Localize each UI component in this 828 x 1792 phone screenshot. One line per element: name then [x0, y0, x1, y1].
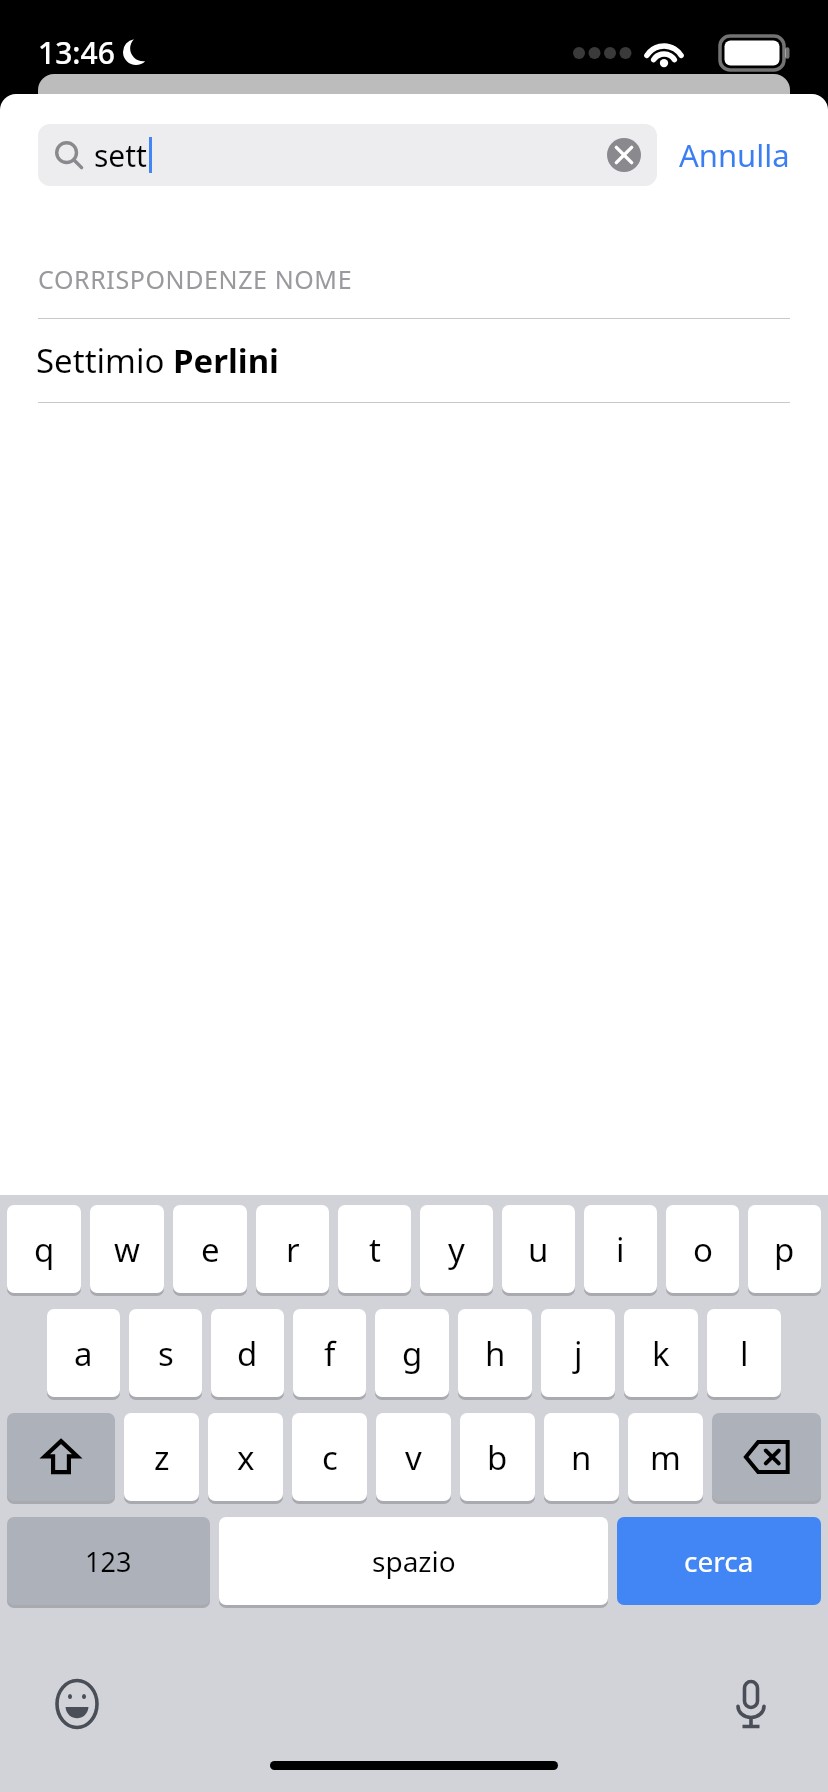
- staticText: g: [402, 1331, 423, 1376]
- button[interactable]: e: [173, 1205, 247, 1293]
- staticText: j: [574, 1331, 583, 1376]
- button[interactable]: h: [458, 1309, 532, 1397]
- button[interactable]: r: [256, 1205, 329, 1293]
- button[interactable]: m: [628, 1413, 703, 1501]
- button[interactable]: l: [707, 1309, 781, 1397]
- button[interactable]: u: [502, 1205, 575, 1293]
- staticText: i: [616, 1227, 625, 1272]
- button[interactable]: [7, 1413, 115, 1501]
- button[interactable]: Dictation: [722, 1675, 780, 1733]
- button[interactable]: [712, 1413, 821, 1501]
- other: Shift: [7, 1413, 115, 1504]
- staticText: Annulla: [679, 134, 790, 176]
- button[interactable]: y: [420, 1205, 493, 1293]
- button[interactable]: c: [292, 1413, 367, 1501]
- button[interactable]: Annulla: [657, 128, 798, 182]
- staticText: f: [324, 1331, 336, 1376]
- button[interactable]: i: [584, 1205, 657, 1293]
- button[interactable]: t: [338, 1205, 411, 1293]
- staticText: cerca: [684, 1542, 754, 1580]
- staticText: w: [114, 1227, 140, 1272]
- button[interactable]: b: [460, 1413, 535, 1501]
- staticText: a: [74, 1331, 93, 1376]
- staticText: y: [448, 1227, 465, 1272]
- staticText: sett: [94, 135, 147, 176]
- button[interactable]: f: [293, 1309, 366, 1397]
- staticText: q: [34, 1227, 55, 1272]
- button[interactable]: g: [375, 1309, 449, 1397]
- staticText: t: [369, 1227, 381, 1272]
- button[interactable]: sett: [38, 124, 657, 186]
- staticText: v: [405, 1435, 422, 1480]
- staticText: n: [571, 1435, 592, 1480]
- staticText: o: [693, 1227, 713, 1272]
- button[interactable]: Settimio Perlini: [0, 319, 828, 402]
- button[interactable]: Clear text: [607, 138, 641, 172]
- staticText: r: [286, 1227, 300, 1272]
- button[interactable]: s: [129, 1309, 202, 1397]
- staticText: spazio: [372, 1542, 456, 1580]
- staticText: h: [485, 1331, 506, 1376]
- button[interactable]: a: [47, 1309, 120, 1397]
- button[interactable]: q: [7, 1205, 81, 1293]
- button[interactable]: o: [666, 1205, 739, 1293]
- button[interactable]: x: [208, 1413, 283, 1501]
- staticText: e: [201, 1227, 220, 1272]
- button[interactable]: cerca: [617, 1517, 821, 1605]
- staticText: p: [774, 1227, 795, 1272]
- button[interactable]: 123: [7, 1517, 210, 1605]
- button[interactable]: w: [90, 1205, 164, 1293]
- staticText: k: [652, 1331, 670, 1376]
- button[interactable]: v: [376, 1413, 451, 1501]
- staticText: m: [650, 1435, 681, 1480]
- staticText: s: [158, 1331, 174, 1376]
- button[interactable]: p: [748, 1205, 821, 1293]
- staticText: l: [740, 1331, 749, 1376]
- staticText: z: [154, 1435, 170, 1480]
- button[interactable]: Emoji keyboard: [48, 1675, 106, 1733]
- staticText: c: [322, 1435, 338, 1480]
- staticText: x: [237, 1435, 255, 1480]
- button[interactable]: d: [211, 1309, 284, 1397]
- button[interactable]: z: [124, 1413, 199, 1501]
- button[interactable]: k: [624, 1309, 698, 1397]
- staticText: d: [237, 1331, 258, 1376]
- button[interactable]: spazio: [219, 1517, 608, 1605]
- staticText: u: [528, 1227, 549, 1272]
- staticText: Settimio Perlini: [36, 338, 279, 383]
- button[interactable]: j: [541, 1309, 615, 1397]
- button[interactable]: n: [544, 1413, 619, 1501]
- staticText: b: [487, 1435, 508, 1480]
- staticText: CORRISPONDENZE NOME: [38, 262, 353, 296]
- staticText: 123: [85, 1543, 132, 1580]
- staticText: 13:46: [38, 32, 115, 73]
- other: Backspace: [712, 1413, 821, 1504]
